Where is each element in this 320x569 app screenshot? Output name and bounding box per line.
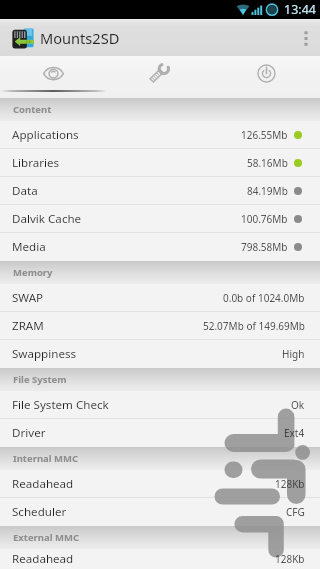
button[interactable]: Status (0, 56, 106, 98)
button[interactable]: SWAP (0, 284, 320, 312)
staticText: Media (12, 239, 46, 255)
staticText: Content (13, 103, 52, 116)
staticText: 126.55Mb (241, 128, 288, 142)
staticText: 52.07Mb of 149.69Mb (203, 319, 305, 333)
staticText: Readahead (12, 476, 74, 492)
staticText: 84.19Mb (247, 184, 288, 198)
staticText: Scheduler (12, 504, 67, 520)
button[interactable]: Dalvik Cache (0, 205, 320, 233)
staticText: Swappiness (12, 346, 77, 362)
button[interactable]: Swappiness (0, 340, 320, 368)
button[interactable]: Scheduler (0, 498, 320, 526)
staticText: External MMC (13, 531, 80, 544)
button[interactable]: Applications (0, 121, 320, 149)
button[interactable]: Readahead (0, 549, 320, 569)
staticText: Ext4 (284, 426, 305, 440)
staticText: 58.16Mb (247, 156, 288, 170)
staticText: Data (12, 183, 38, 199)
staticText: ZRAM (12, 318, 44, 334)
button[interactable]: Readahead (0, 470, 320, 498)
staticText: CFG (286, 505, 305, 519)
button[interactable]: File System Check (0, 391, 320, 419)
staticText: Applications (12, 127, 79, 143)
button[interactable]: ZRAM (0, 312, 320, 340)
staticText: 13:44 (284, 1, 316, 18)
staticText: Dalvik Cache (12, 211, 82, 227)
staticText: SWAP (12, 290, 44, 306)
button[interactable]: Driver (0, 419, 320, 447)
staticText: Readahead (12, 551, 74, 567)
staticText: Libraries (12, 155, 60, 171)
staticText: Driver (12, 425, 46, 441)
staticText: 128Kb (275, 477, 305, 491)
staticText: 798.58Mb (241, 240, 288, 254)
staticText: Mounts2SD (40, 28, 120, 48)
staticText: Internal MMC (13, 452, 79, 465)
button[interactable]: Data (0, 177, 320, 205)
button[interactable]: More options (292, 19, 320, 56)
staticText: Ok (291, 398, 305, 412)
staticText: Memory (13, 266, 53, 279)
staticText: File System Check (12, 397, 109, 413)
staticText: 128Kb (275, 552, 305, 566)
staticText: 0.0b of 1024.0Mb (223, 291, 305, 305)
staticText: File System (13, 373, 67, 386)
button[interactable]: Info (213, 56, 320, 98)
staticText: High (282, 347, 305, 361)
button[interactable]: Settings (106, 56, 213, 98)
button[interactable]: Media (0, 233, 320, 261)
staticText: 100.76Mb (241, 212, 288, 226)
button[interactable]: Libraries (0, 149, 320, 177)
